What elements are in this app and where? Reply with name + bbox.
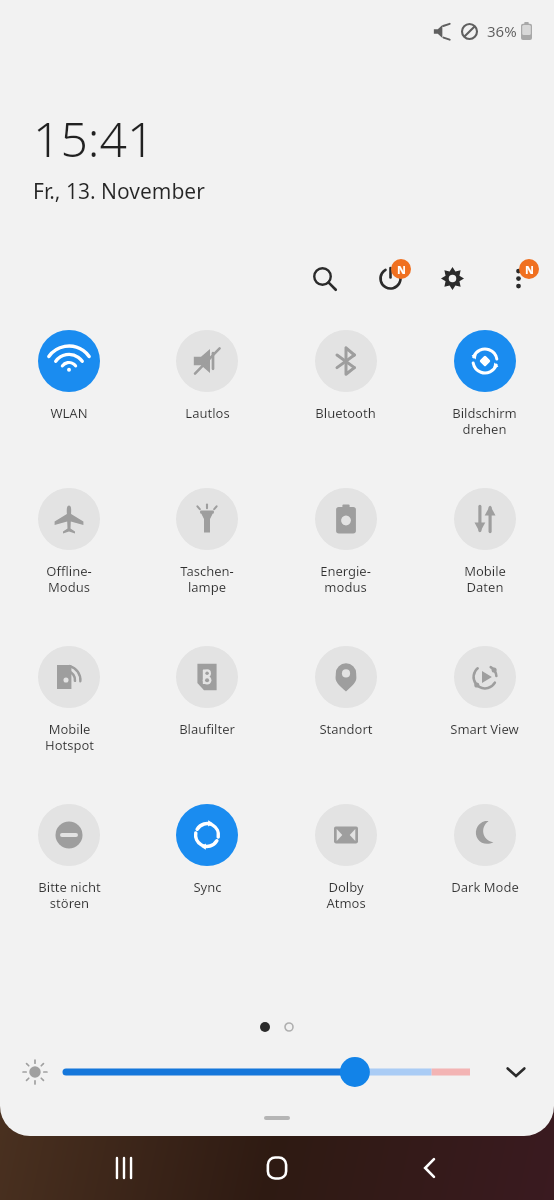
- button[interactable]: Mobile Hotspot: [0, 646, 138, 776]
- button[interactable]: Settings: [430, 256, 474, 300]
- button[interactable]: Dark Mode: [415, 804, 554, 934]
- staticText: N: [525, 262, 534, 277]
- button[interactable]: Power: [368, 256, 412, 300]
- button[interactable]: Dolby Atmos: [276, 804, 415, 934]
- staticText: 36%: [487, 21, 517, 41]
- staticText: Dark Mode: [451, 878, 519, 896]
- button[interactable]: Bildschirm drehen: [415, 330, 554, 460]
- button[interactable]: Taschen- lampe: [138, 488, 276, 618]
- button[interactable]: Energie- modus: [276, 488, 415, 618]
- staticText: Sync: [193, 878, 222, 896]
- staticText: Blaufilter: [179, 720, 235, 738]
- button[interactable]: Expand brightness settings: [496, 1052, 536, 1092]
- staticText: Mobile Daten: [464, 562, 506, 595]
- button[interactable]: Home: [248, 1139, 306, 1197]
- staticText: Bildschirm drehen: [452, 404, 517, 437]
- staticText: Mobile Hotspot: [45, 720, 94, 753]
- staticText: N: [397, 262, 406, 277]
- button[interactable]: Smart View: [415, 646, 554, 776]
- button[interactable]: Back: [401, 1139, 459, 1197]
- staticText: Smart View: [450, 720, 519, 738]
- staticText: Lautlos: [185, 404, 230, 422]
- button[interactable]: [66, 1056, 470, 1088]
- button[interactable]: Standort: [276, 646, 415, 776]
- button[interactable]: Blaufilter: [138, 646, 276, 776]
- button[interactable]: Bitte nicht stören: [0, 804, 138, 934]
- button[interactable]: Sync: [138, 804, 276, 934]
- button[interactable]: Collapse panel: [264, 1116, 290, 1120]
- staticText: Dolby Atmos: [326, 878, 366, 911]
- button[interactable]: Offline- Modus: [0, 488, 138, 618]
- staticText: Energie- modus: [320, 562, 371, 595]
- button[interactable]: Search: [302, 256, 346, 300]
- staticText: Taschen- lampe: [180, 562, 234, 595]
- staticText: WLAN: [50, 404, 88, 422]
- button[interactable]: Mobile Daten: [415, 488, 554, 618]
- staticText: Fr., 13. November: [33, 177, 205, 206]
- button[interactable]: More options: [496, 256, 540, 300]
- staticText: 15:41: [33, 106, 155, 171]
- button[interactable]: Lautlos: [138, 330, 276, 460]
- staticText: Bluetooth: [315, 404, 376, 422]
- staticText: Offline- Modus: [46, 562, 92, 595]
- button[interactable]: WLAN: [0, 330, 138, 460]
- staticText: Bitte nicht stören: [38, 878, 101, 911]
- button[interactable]: Bluetooth: [276, 330, 415, 460]
- staticText: Standort: [319, 720, 373, 738]
- button[interactable]: Recent apps: [95, 1139, 153, 1197]
